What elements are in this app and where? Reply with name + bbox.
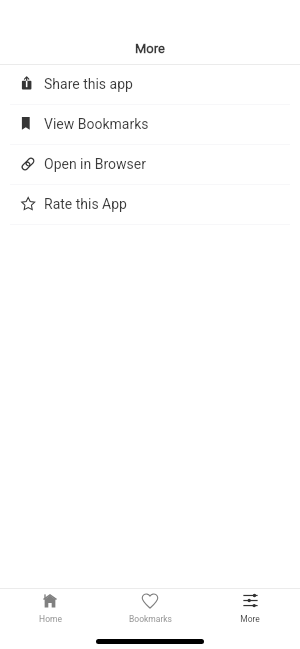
button[interactable]: Share this app [0,65,300,104]
staticText: Share this app [44,76,133,92]
staticText: More [240,614,260,624]
staticText: Bookmarks [129,614,172,624]
button[interactable]: Bookmarks [100,589,200,624]
button[interactable]: Rate this App [0,185,300,224]
staticText: Home [39,614,62,624]
button[interactable]: More [200,589,300,624]
button[interactable]: Home [0,589,100,624]
button[interactable]: Open in Browser [0,145,300,184]
staticText: More [135,41,165,56]
staticText: Rate this App [44,196,127,212]
staticText: Open in Browser [44,156,146,172]
button[interactable]: View Bookmarks [0,105,300,144]
staticText: View Bookmarks [44,116,149,132]
